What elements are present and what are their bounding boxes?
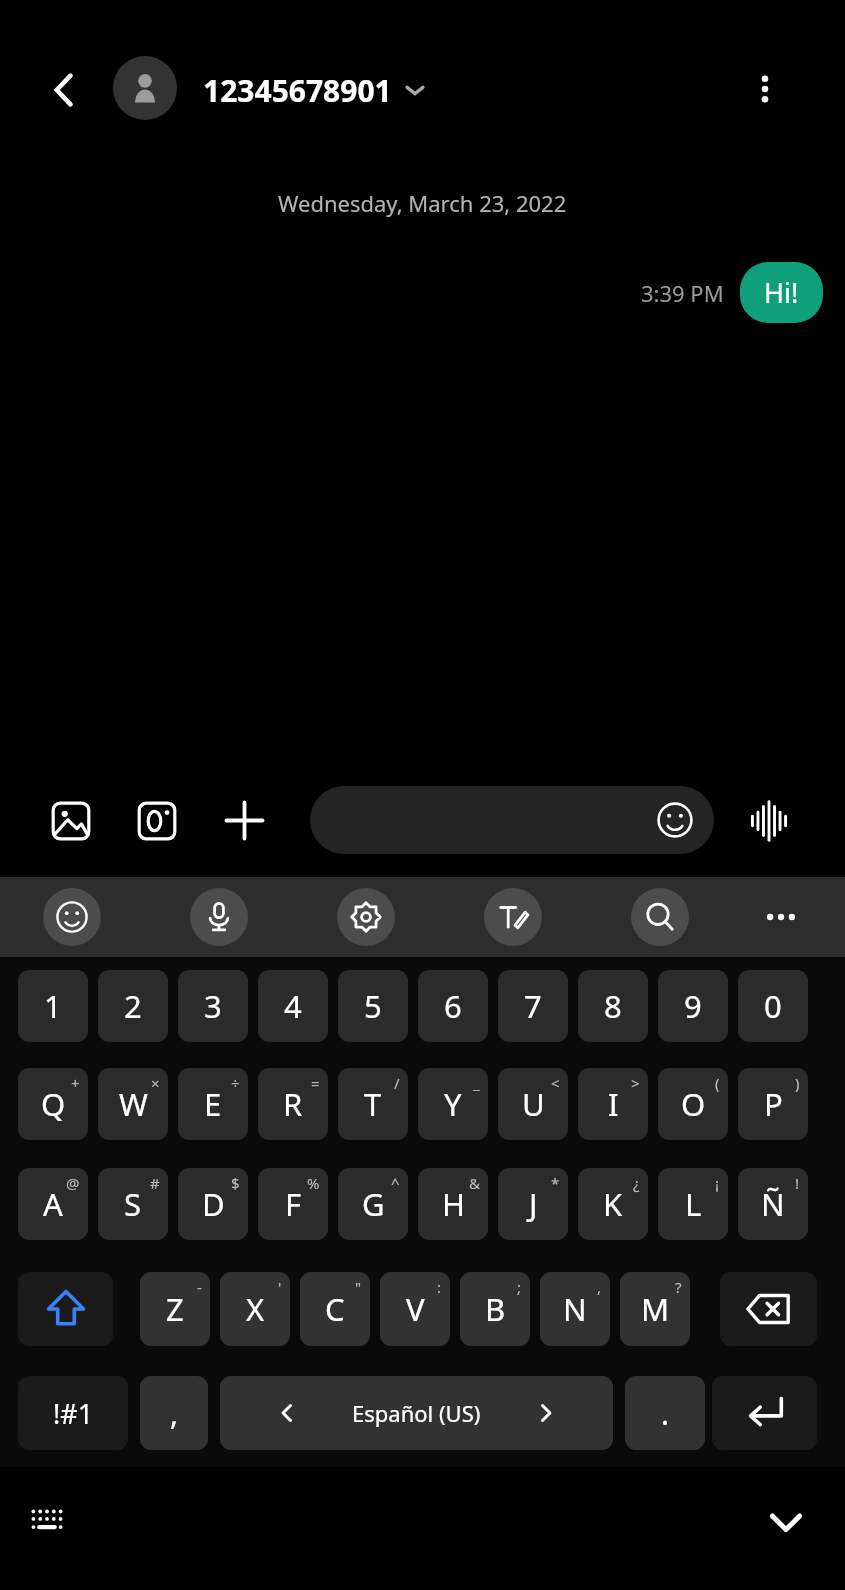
staticText: 3:39 PM bbox=[641, 278, 724, 308]
staticText: Ñ bbox=[761, 1183, 785, 1225]
button[interactable]: 12345678901 bbox=[203, 60, 426, 120]
button[interactable]: S bbox=[98, 1168, 168, 1240]
staticText: @ bbox=[66, 1173, 80, 1193]
staticText: W bbox=[119, 1083, 148, 1125]
button[interactable]: Hi! bbox=[740, 262, 823, 323]
button[interactable]: Y bbox=[418, 1068, 488, 1140]
staticText: 12345678901 bbox=[203, 70, 392, 111]
button[interactable]: C bbox=[300, 1272, 370, 1346]
staticText: $ bbox=[231, 1173, 240, 1193]
staticText: ¿ bbox=[633, 1173, 640, 1193]
button[interactable]: Gallery bbox=[50, 800, 92, 842]
staticText: ? bbox=[675, 1277, 682, 1297]
button[interactable]: More options bbox=[732, 56, 798, 122]
button[interactable]: V bbox=[380, 1272, 450, 1346]
button[interactable]: Shift bbox=[18, 1272, 113, 1346]
button[interactable]: Backspace bbox=[720, 1272, 817, 1346]
button[interactable]: Q bbox=[18, 1068, 88, 1140]
button[interactable]: 1 bbox=[18, 970, 88, 1042]
staticText: M bbox=[641, 1288, 670, 1330]
button[interactable]: I bbox=[578, 1068, 648, 1140]
button[interactable]: Hide keyboard bbox=[756, 1492, 816, 1552]
button[interactable]: Space, Español (US) bbox=[220, 1376, 613, 1450]
staticText: 9 bbox=[684, 985, 702, 1027]
button[interactable]: Voice input bbox=[190, 888, 248, 946]
button[interactable]: More keyboard options bbox=[752, 888, 810, 946]
button[interactable]: A bbox=[18, 1168, 88, 1240]
staticText: ' bbox=[278, 1277, 282, 1297]
staticText: ^ bbox=[391, 1173, 400, 1193]
button[interactable]: . bbox=[625, 1376, 705, 1450]
staticText: L bbox=[685, 1183, 702, 1225]
staticText: - bbox=[197, 1277, 202, 1297]
staticText: !#1 bbox=[53, 1395, 94, 1432]
staticText: P bbox=[764, 1083, 783, 1125]
button[interactable]: Search bbox=[631, 888, 689, 946]
button[interactable]: R bbox=[258, 1068, 328, 1140]
button[interactable]: B bbox=[460, 1272, 530, 1346]
button[interactable]: Settings bbox=[337, 888, 395, 946]
staticText: % bbox=[307, 1173, 320, 1193]
button[interactable]: 6 bbox=[418, 970, 488, 1042]
button[interactable]: W bbox=[98, 1068, 168, 1140]
staticText: 1 bbox=[44, 985, 62, 1027]
staticText: + bbox=[71, 1073, 80, 1093]
button[interactable]: G bbox=[338, 1168, 408, 1240]
button[interactable]: P bbox=[738, 1068, 808, 1140]
staticText: × bbox=[151, 1073, 160, 1093]
button[interactable]: Handwriting bbox=[484, 888, 542, 946]
button[interactable]: O bbox=[658, 1068, 728, 1140]
button[interactable]: 5 bbox=[338, 970, 408, 1042]
staticText: . bbox=[661, 1393, 670, 1434]
staticText: > bbox=[631, 1073, 640, 1093]
button[interactable]: 9 bbox=[658, 970, 728, 1042]
button[interactable]: Symbols bbox=[18, 1376, 128, 1450]
button[interactable]: X bbox=[220, 1272, 290, 1346]
button[interactable]: 3 bbox=[178, 970, 248, 1042]
staticText: Q bbox=[41, 1083, 66, 1125]
button[interactable]: E bbox=[178, 1068, 248, 1140]
button[interactable]: L bbox=[658, 1168, 728, 1240]
button[interactable]: 7 bbox=[498, 970, 568, 1042]
button[interactable]: N bbox=[540, 1272, 610, 1346]
staticText: V bbox=[406, 1288, 425, 1330]
button[interactable]: F bbox=[258, 1168, 328, 1240]
button[interactable]: 4 bbox=[258, 970, 328, 1042]
button[interactable]: Voice message bbox=[746, 798, 792, 844]
button[interactable]: D bbox=[178, 1168, 248, 1240]
button[interactable]: 0 bbox=[738, 970, 808, 1042]
button[interactable]: Camera bbox=[136, 800, 178, 842]
button[interactable]: Add attachment bbox=[222, 798, 267, 843]
staticText: * bbox=[551, 1173, 560, 1193]
button[interactable]: 2 bbox=[98, 970, 168, 1042]
button[interactable]: Contact avatar bbox=[113, 56, 177, 120]
staticText: = bbox=[311, 1073, 320, 1093]
staticText: N bbox=[563, 1288, 587, 1330]
staticText: R bbox=[283, 1083, 303, 1125]
button[interactable]: M bbox=[620, 1272, 690, 1346]
button[interactable]: Enter bbox=[712, 1376, 817, 1450]
staticText: 5 bbox=[364, 985, 382, 1027]
button[interactable]: , bbox=[140, 1376, 208, 1450]
button[interactable]: Back bbox=[30, 56, 98, 124]
staticText: ¡ bbox=[715, 1173, 720, 1193]
button[interactable]: K bbox=[578, 1168, 648, 1240]
staticText: K bbox=[603, 1183, 623, 1225]
staticText: E bbox=[204, 1083, 222, 1125]
button[interactable]: Z bbox=[140, 1272, 210, 1346]
button[interactable]: H bbox=[418, 1168, 488, 1240]
button[interactable]: Ñ bbox=[738, 1168, 808, 1240]
staticText: U bbox=[522, 1083, 545, 1125]
button[interactable]: Emoji bbox=[43, 888, 101, 946]
staticText: ! bbox=[795, 1173, 800, 1193]
button[interactable]: Keyboard layout bbox=[18, 1492, 76, 1550]
staticText: " bbox=[355, 1277, 362, 1297]
staticText: D bbox=[202, 1183, 225, 1225]
button[interactable]: 8 bbox=[578, 970, 648, 1042]
button[interactable]: J bbox=[498, 1168, 568, 1240]
button[interactable]: T bbox=[338, 1068, 408, 1140]
button[interactable]: U bbox=[498, 1068, 568, 1140]
staticText: 0 bbox=[764, 985, 782, 1027]
button[interactable]: Message input bbox=[310, 786, 714, 854]
staticText: X bbox=[246, 1288, 265, 1330]
